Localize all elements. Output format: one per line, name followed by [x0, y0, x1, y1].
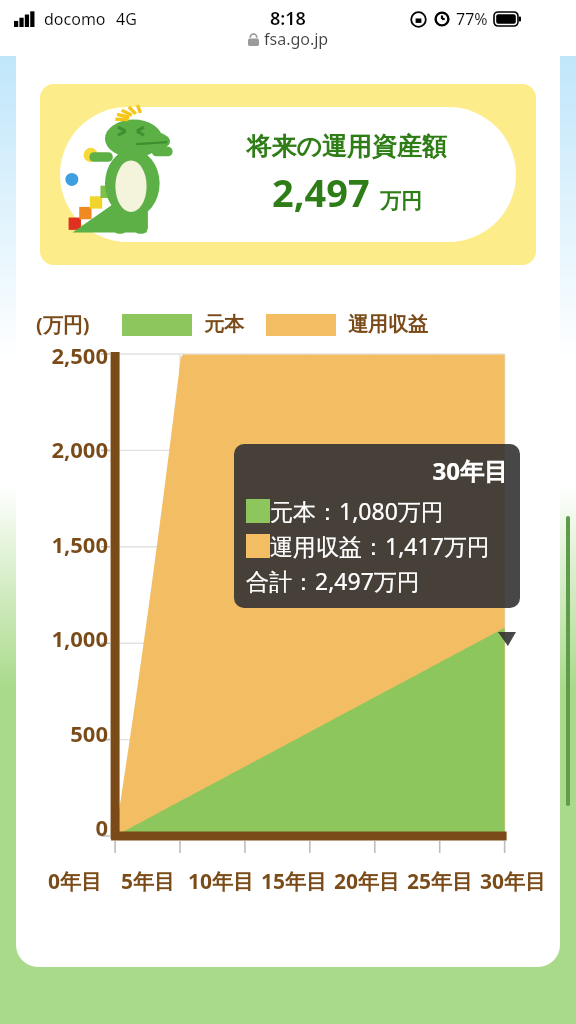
staticText: 25年目 [407, 867, 474, 896]
staticText: 元本：1,080万円 [270, 495, 444, 526]
staticText: 1,000 [16, 623, 108, 653]
staticText: 5年目 [121, 867, 176, 896]
staticText: (万円) [36, 311, 90, 338]
staticText: 運用収益 [348, 312, 428, 337]
staticText: 8:18 [270, 6, 306, 31]
staticText: 10年目 [188, 867, 255, 896]
staticText: 万円 [380, 188, 422, 214]
staticText: docomo [44, 8, 106, 30]
staticText: 0 [16, 812, 108, 842]
button[interactable]: 30年目 [246, 454, 508, 596]
staticText: 30年目 [246, 454, 508, 487]
staticText: 500 [16, 718, 108, 748]
staticText: 30年目 [480, 867, 547, 896]
staticText: fsa.go.jp [264, 28, 329, 50]
button[interactable]: 将来の運用資産額 [40, 84, 536, 265]
staticText: 77% [456, 8, 488, 30]
staticText: 4G [116, 8, 137, 30]
staticText: 0年目 [48, 867, 103, 896]
staticText: 2,000 [16, 434, 108, 464]
staticText: 15年目 [261, 867, 328, 896]
staticText: 20年目 [334, 867, 401, 896]
staticText: 合計：2,497万円 [246, 565, 420, 596]
staticText: 1,500 [16, 529, 108, 559]
staticText: 将来の運用資産額 [246, 131, 447, 162]
staticText: 運用収益：1,417万円 [270, 530, 490, 561]
staticText: 2,497 [272, 166, 370, 218]
staticText: 元本 [204, 312, 244, 337]
staticText: 2,500 [16, 340, 108, 370]
